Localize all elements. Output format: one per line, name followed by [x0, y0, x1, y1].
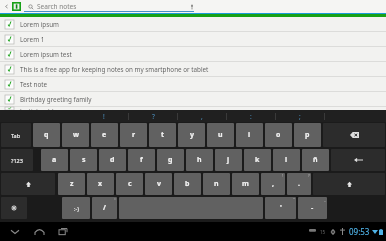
button[interactable]: x: [87, 173, 114, 195]
button[interactable]: n: [203, 173, 230, 195]
staticText: 15: [320, 229, 326, 235]
button[interactable]: Search notes: [28, 0, 198, 13]
staticText: ?: [308, 173, 310, 178]
staticText: c: [128, 179, 132, 189]
staticText: ?123: [11, 157, 23, 164]
button[interactable]: Test note: [0, 77, 386, 91]
button[interactable]: Voice search: [188, 3, 196, 11]
button[interactable]: ;: [276, 110, 324, 122]
button[interactable]: c: [116, 173, 143, 195]
staticText: u: [218, 130, 223, 140]
button[interactable]: .: [287, 173, 311, 195]
button[interactable]: :-): [62, 197, 90, 219]
button[interactable]: q: [33, 123, 60, 147]
button[interactable]: l: [273, 149, 300, 171]
staticText: w: [73, 130, 79, 140]
button[interactable]: a: [41, 149, 68, 171]
button[interactable]: v: [145, 173, 172, 195]
button[interactable]: u: [207, 123, 234, 147]
staticText: Search notes: [37, 2, 77, 11]
button[interactable]: Keyboard settings: [1, 197, 27, 219]
staticText: l: [285, 155, 288, 165]
button[interactable]: r: [120, 123, 147, 147]
staticText: :: [250, 112, 252, 121]
staticText: ,: [201, 112, 203, 121]
button[interactable]: Tab: [1, 123, 31, 147]
staticText: ,: [272, 179, 274, 189]
button[interactable]: o: [265, 123, 292, 147]
staticText: Lorem ipsum: [20, 20, 59, 29]
button[interactable]: This is a free app for keeping notes on …: [0, 62, 386, 76]
button[interactable]: p: [294, 123, 321, 147]
staticText: !: [282, 173, 284, 178]
button[interactable]: -: [298, 197, 327, 219]
staticText: .: [298, 179, 300, 189]
button[interactable]: Back: [2, 0, 11, 13]
staticText: -: [311, 203, 314, 213]
button[interactable]: e: [91, 123, 118, 147]
button[interactable]: ,: [178, 110, 226, 122]
button[interactable]: Home: [30, 222, 48, 241]
staticText: ': [280, 203, 282, 213]
button[interactable]: !: [80, 110, 128, 122]
button[interactable]: s: [70, 149, 97, 171]
button[interactable]: i: [236, 123, 263, 147]
button[interactable]: j: [215, 149, 242, 171]
staticText: °: [114, 197, 116, 202]
button[interactable]: ?123: [1, 149, 33, 171]
staticText: h: [197, 155, 202, 165]
button[interactable]: :: [227, 110, 275, 122]
button[interactable]: Lorem ipsum test: [0, 47, 386, 61]
staticText: n: [214, 179, 219, 189]
button[interactable]: Shift: [313, 173, 385, 195]
button[interactable]: Backspace: [323, 123, 385, 147]
button[interactable]: Justin's address: [0, 107, 386, 110]
staticText: i: [248, 130, 251, 140]
button[interactable]: k: [244, 149, 271, 171]
staticText: :-): [74, 205, 79, 212]
staticText: v: [157, 179, 161, 189]
button[interactable]: f: [128, 149, 155, 171]
button[interactable]: Shift: [1, 173, 55, 195]
button[interactable]: y: [178, 123, 205, 147]
button[interactable]: Lorem 1: [0, 32, 386, 46]
staticText: /: [103, 203, 106, 213]
staticText: x: [98, 179, 103, 189]
button[interactable]: z: [58, 173, 85, 195]
button[interactable]: Recent apps: [54, 222, 72, 241]
button[interactable]: ': [265, 197, 296, 219]
button[interactable]: t: [149, 123, 176, 147]
button[interactable]: b: [174, 173, 201, 195]
button[interactable]: ,: [261, 173, 285, 195]
staticText: g: [168, 155, 173, 165]
button[interactable]: App icon: [11, 1, 22, 12]
staticText: Lorem 1: [20, 35, 45, 44]
staticText: b: [185, 179, 190, 189]
button[interactable]: /: [92, 197, 117, 219]
staticText: q: [44, 130, 49, 140]
button[interactable]: ñ: [302, 149, 329, 171]
staticText: ?: [152, 112, 155, 121]
staticText: Tab: [11, 132, 21, 139]
button[interactable]: Lorem ipsum: [0, 17, 386, 31]
staticText: 09:53: [349, 226, 370, 237]
staticText: y: [190, 130, 194, 140]
button[interactable]: Back: [6, 222, 24, 241]
button[interactable]: Enter: [331, 149, 385, 171]
staticText: a: [52, 155, 57, 165]
button[interactable]: h: [186, 149, 213, 171]
staticText: !: [103, 112, 105, 121]
button[interactable]: ?: [129, 110, 177, 122]
button[interactable]: w: [62, 123, 89, 147]
staticText: s: [82, 155, 86, 165]
button[interactable]: d: [99, 149, 126, 171]
staticText: t: [161, 130, 165, 140]
button[interactable]: g: [157, 149, 184, 171]
button[interactable]: Birthday greeting family: [0, 92, 386, 106]
staticText: Justin's address: [20, 107, 66, 110]
staticText: e: [102, 130, 107, 140]
staticText: p: [305, 130, 310, 140]
staticText: Test note: [20, 80, 48, 89]
button[interactable]: m: [232, 173, 259, 195]
